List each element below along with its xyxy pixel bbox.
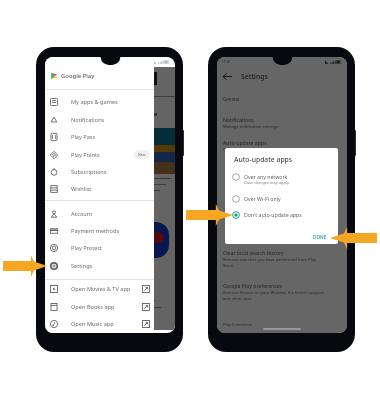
staticText: Clear local search history [223,249,284,256]
staticText: Notifications [223,116,254,123]
staticText: Remove finance on your Wishlist, if a fi… [223,290,325,301]
button[interactable]: Subscriptions [45,163,154,180]
button[interactable]: Settings [45,257,154,274]
staticText: Payment methods [71,227,120,235]
button[interactable]: Play Protect [45,239,154,256]
button[interactable]: My apps & games [45,93,154,110]
button[interactable]: Open Books app [45,298,154,315]
staticText: Auto-update apps [223,139,267,146]
staticText: Subscriptions [71,168,107,176]
button[interactable]: Notifications [217,116,347,130]
button[interactable]: Google Play [45,67,154,85]
button[interactable]: Play Points [45,146,154,163]
staticText: Over any network [244,173,288,180]
staticText: My apps & games [71,98,118,106]
staticText: Settings [241,72,268,81]
staticText: Auto-update apps [234,155,293,164]
button[interactable]: Over Wi-Fi only [232,195,338,203]
staticText: Account [71,210,93,218]
button[interactable]: Account [45,205,154,222]
button[interactable]: Google Play preferences [217,282,347,301]
staticText: Play Pass [71,133,96,141]
staticText: Remove searches you have performed from … [223,257,317,268]
staticText: Play Protect [71,244,103,252]
staticText: Over Wi-Fi only [223,147,252,153]
button[interactable]: Clear local search history [217,249,347,268]
staticText: General [223,96,240,102]
button[interactable]: Don't auto-update apps [232,211,338,219]
staticText: Google Play [61,72,95,80]
button[interactable]: Over any network [232,173,338,185]
staticText: Data charges may apply [244,180,290,185]
staticText: Play Commerce [223,322,253,327]
staticText: Over Wi-Fi only [244,195,281,202]
staticText: Manage notification settings [223,124,278,130]
staticText: Notifications [71,116,105,124]
staticText: Open Movies & TV app [71,285,131,293]
button[interactable]: Open Music app [45,315,154,332]
button[interactable]: Play Pass [45,128,154,145]
staticText: Play Points [71,151,100,159]
button[interactable]: Wishlist [45,180,154,197]
staticText: Wishlist [71,185,92,193]
button[interactable]: Open Movies & TV app [45,280,154,297]
staticText: DONE [313,234,327,240]
staticText: New [138,152,146,157]
button[interactable]: Auto-update apps [217,139,347,153]
button[interactable]: Notifications [45,111,154,128]
staticText: Open Books app [71,303,115,311]
staticText: Google Play preferences [223,282,283,289]
button[interactable]: Back [222,71,233,82]
staticText: Open Music app [71,320,114,328]
staticText: 11:40 [222,60,231,64]
button[interactable]: DONE [310,232,330,242]
button[interactable]: Payment methods [45,222,154,239]
staticText: Don't auto-update apps [244,211,302,218]
staticText: Settings [71,262,93,270]
